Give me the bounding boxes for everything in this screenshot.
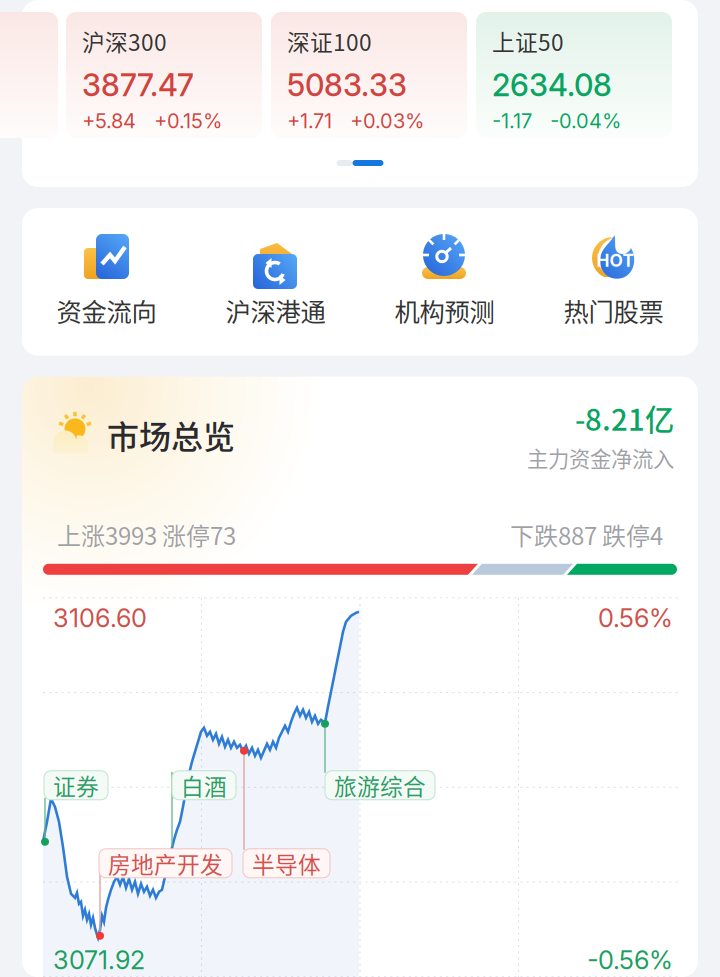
staticText: 5083.33 [287,66,407,103]
staticText: -8.21亿 [575,397,674,439]
staticText: 机构预测 [394,292,494,329]
staticText: 资金流向 [56,292,156,329]
button[interactable]: 上证50 [476,12,672,138]
button[interactable]: 沪深港通 [191,234,360,329]
staticText: 深证100 [287,25,372,57]
staticText: +5.84 +0.15% [82,109,222,133]
staticText: 2634.08 [492,66,612,103]
staticText: 下跌887 跌停4 [510,517,663,552]
staticText: HOT [596,250,634,271]
button[interactable]: 机构预测 [360,234,529,329]
button[interactable]: 沪深300 [66,12,262,138]
staticText: 沪深港通 [225,292,325,329]
staticText: 证券 [53,769,99,802]
staticText: 房地产开发 [108,847,223,880]
staticText: 旅游综合 [334,769,426,802]
staticText: 3071.92 [53,945,145,975]
staticText: 3106.60 [53,603,147,633]
button[interactable]: 资金流向 [22,234,191,329]
staticText: 上证50 [492,25,564,57]
button[interactable]: HOT [529,234,698,329]
staticText: 半导体 [252,847,321,880]
staticText: 上涨3993 涨停73 [57,517,236,552]
button[interactable]: 深证100 [271,12,467,138]
staticText: -0.56% [587,945,673,975]
staticText: 3877.47 [82,66,194,103]
staticText: +1.71 +0.03% [287,109,424,133]
staticText: 白酒 [181,769,227,802]
staticText: 0.56% [598,603,673,633]
staticText: 市场总览 [107,412,235,458]
staticText: 热门股票 [563,292,663,329]
staticText: -1.17 -0.04% [492,109,621,133]
staticText: 主力资金净流入 [527,442,674,473]
staticText: 沪深300 [82,25,167,57]
